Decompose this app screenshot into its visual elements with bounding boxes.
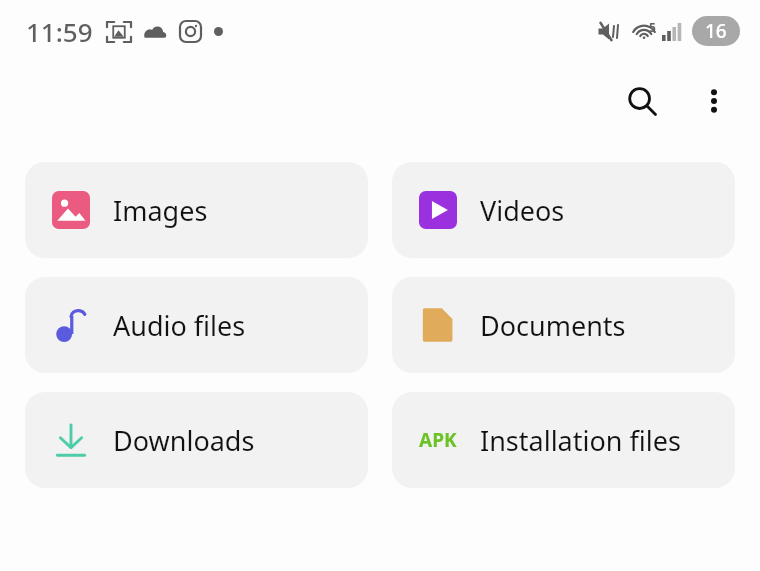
staticText: 16 [705, 18, 727, 44]
button[interactable]: Audio files [25, 277, 368, 373]
staticText: Installation files [480, 422, 681, 459]
staticText: Images [113, 192, 208, 229]
staticText: Downloads [113, 422, 255, 459]
button[interactable]: APK [392, 392, 735, 488]
staticText: 11:59 [26, 14, 93, 49]
staticText: APK [419, 427, 457, 453]
staticText: Videos [480, 192, 565, 229]
button[interactable]: Search [614, 73, 670, 129]
staticText: Documents [480, 307, 626, 344]
button[interactable]: More options [686, 73, 742, 129]
button[interactable]: Documents [392, 277, 735, 373]
staticText: Audio files [113, 307, 246, 344]
button[interactable]: Videos [392, 162, 735, 258]
staticText: 5 [649, 19, 656, 35]
button[interactable]: Downloads [25, 392, 368, 488]
button[interactable]: Images [25, 162, 368, 258]
